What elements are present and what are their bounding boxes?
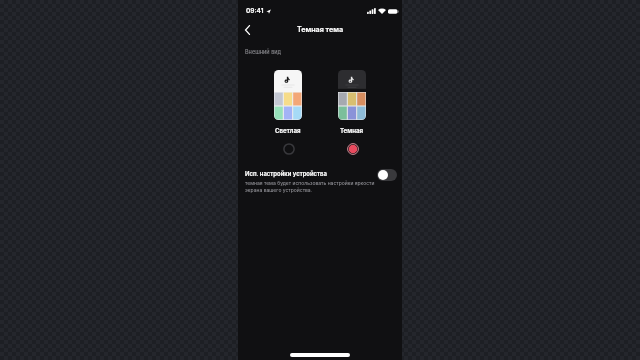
staticText: Внешний вид <box>245 49 282 56</box>
button[interactable]: Исп. настройки устройства <box>238 166 402 179</box>
button[interactable]: Темная <box>338 70 366 120</box>
button[interactable]: Светлая <box>274 70 302 120</box>
staticText: 09:41 <box>246 7 264 15</box>
staticText: Темная <box>340 127 364 135</box>
staticText: Исп. настройки устройства <box>245 170 327 177</box>
button[interactable]: Темная selected <box>345 141 360 156</box>
button[interactable]: Back <box>238 21 256 39</box>
staticText: Темная тема <box>297 25 344 34</box>
button[interactable]: Use device settings <box>377 169 397 181</box>
staticText: темная тема будет использовать настройки… <box>245 180 375 193</box>
staticText: Светлая <box>275 127 301 135</box>
button[interactable]: Светлая <box>281 141 296 156</box>
